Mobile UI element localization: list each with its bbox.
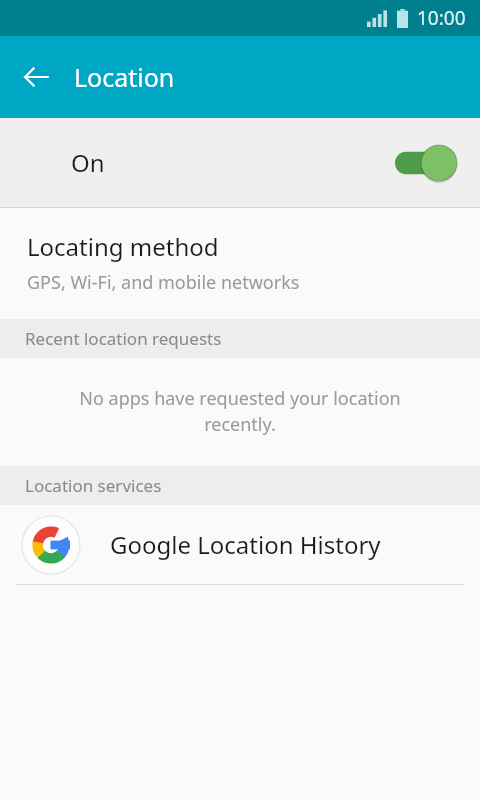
staticText: Location [74,60,175,94]
button[interactable]: Locating method [0,208,480,319]
staticText: Locating method [27,230,219,263]
staticText: Location services [25,474,162,497]
button[interactable]: Navigate up [10,51,62,103]
staticText: Google Location History [110,528,381,561]
staticText: GPS, Wi-Fi, and mobile networks [27,270,300,295]
staticText: 10:00 [417,5,466,31]
staticText: No apps have requested your location rec… [55,386,425,436]
button[interactable]: On [0,118,480,207]
staticText: Recent location requests [25,327,222,350]
staticText: On [71,146,105,179]
button[interactable]: Google Location History [0,505,480,584]
